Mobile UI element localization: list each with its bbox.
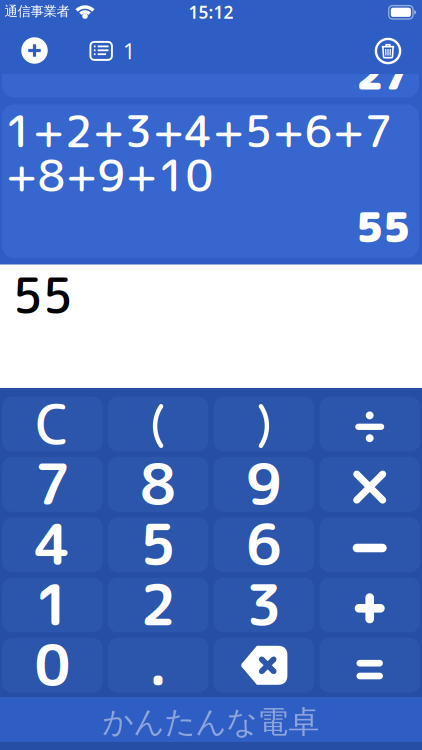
button[interactable] (214, 397, 314, 451)
staticText: 27 (356, 45, 410, 103)
staticText: . (149, 625, 168, 703)
staticText: +8+9+10 (5, 144, 213, 206)
staticText: 0 (34, 625, 70, 703)
button[interactable] (319, 578, 420, 632)
staticText: 2 (140, 565, 176, 643)
staticText: 9 (246, 444, 282, 522)
button[interactable]: 2 (108, 578, 208, 632)
staticText: 1 (123, 37, 135, 65)
button[interactable] (319, 397, 420, 451)
staticText: 4 (34, 505, 70, 583)
staticText: 6 (246, 505, 282, 583)
button[interactable]: 9 (214, 457, 314, 512)
button[interactable]: 1 (89, 37, 135, 64)
button[interactable] (319, 517, 420, 572)
button[interactable]: C (2, 397, 103, 451)
button[interactable] (108, 397, 208, 451)
button[interactable]: 0 (2, 638, 103, 693)
button[interactable] (214, 638, 314, 693)
button[interactable]: 4 (2, 517, 103, 572)
button[interactable] (319, 638, 420, 693)
staticText: 5 (140, 505, 176, 583)
staticText: 55 (356, 198, 410, 255)
staticText: 15:12 (188, 0, 233, 23)
staticText: 1 (34, 565, 70, 643)
staticText: 1+2+3+4+5+6+7 (4, 100, 392, 161)
staticText: 通信事業者 (4, 3, 69, 19)
button[interactable] (374, 37, 401, 64)
button[interactable]: 1 (2, 578, 103, 632)
button[interactable]: 7 (2, 457, 103, 512)
button[interactable]: 5 (108, 517, 208, 572)
button[interactable]: 3 (214, 578, 314, 632)
staticText: 8 (140, 444, 176, 522)
button[interactable]: . (108, 638, 208, 693)
staticText: 7 (34, 444, 70, 522)
button[interactable] (319, 457, 420, 512)
button[interactable] (21, 37, 48, 64)
staticText: 55 (13, 262, 73, 329)
staticText: C (35, 385, 69, 462)
button[interactable]: 6 (214, 517, 314, 572)
staticText: 3 (246, 565, 282, 643)
staticText: かんたんな電卓 (102, 703, 319, 741)
button[interactable]: 8 (108, 457, 208, 512)
